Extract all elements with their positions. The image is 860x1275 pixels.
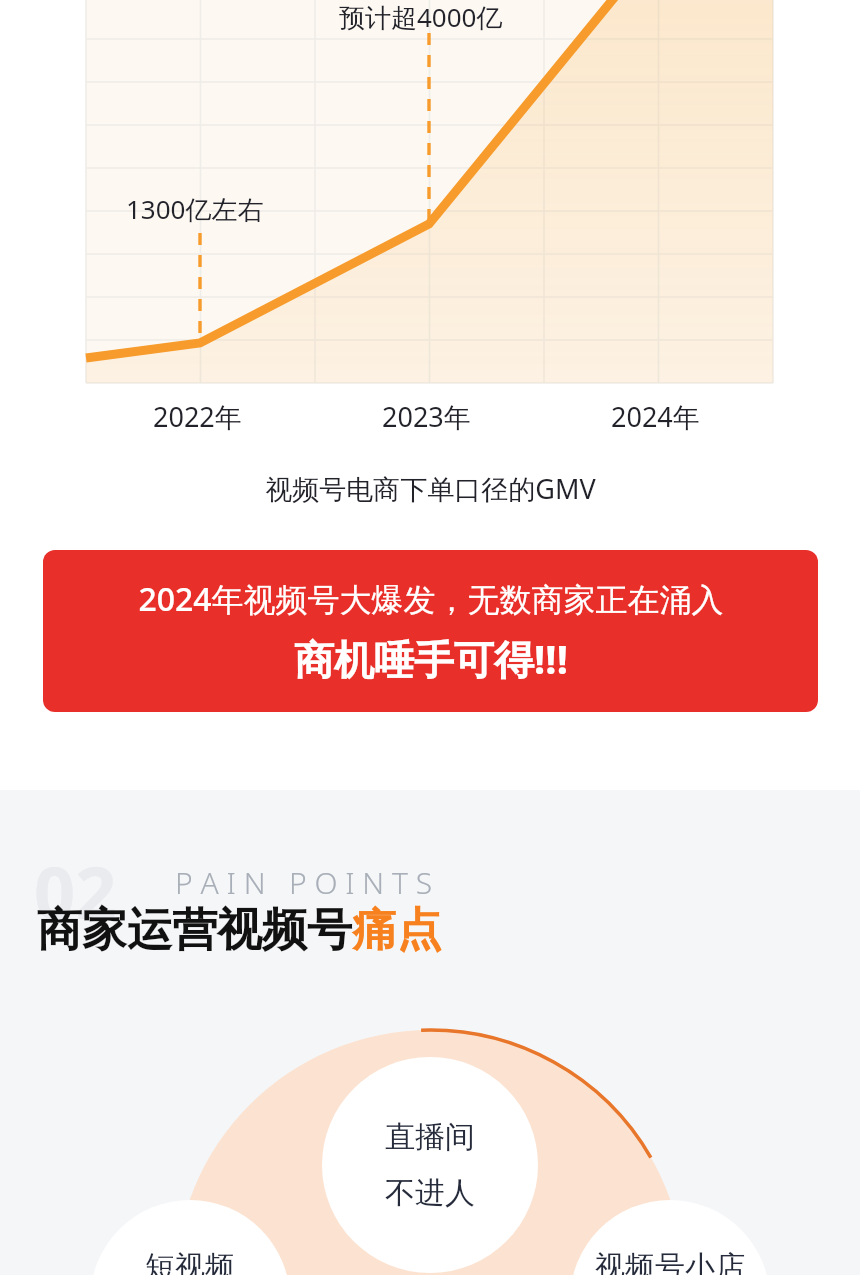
staticText: 2023年 bbox=[382, 398, 471, 435]
staticText: 02 bbox=[34, 842, 117, 940]
button[interactable]: 2024年视频号大爆发，无数商家正在涌入 bbox=[43, 550, 818, 712]
staticText: 不进人 bbox=[385, 1174, 475, 1212]
button[interactable]: 直播间 bbox=[322, 1057, 538, 1273]
staticText: 直播间 bbox=[385, 1118, 475, 1156]
staticText: 预计超4000亿 bbox=[339, 0, 503, 35]
staticText: 2022年 bbox=[153, 398, 242, 435]
staticText: 2024年视频号大爆发，无数商家正在涌入 bbox=[138, 577, 724, 621]
staticText: 2024年 bbox=[611, 398, 700, 435]
staticText: 短视频 bbox=[145, 1248, 235, 1275]
staticText: 商家运营视频号 bbox=[37, 902, 352, 959]
staticText: 视频号小店 bbox=[595, 1248, 745, 1275]
staticText: 痛点 bbox=[352, 902, 442, 959]
button[interactable]: 视频号小店 bbox=[570, 1200, 770, 1275]
staticText: 视频号电商下单口径的GMV bbox=[265, 470, 596, 507]
staticText: 商机唾手可得!!! bbox=[294, 631, 568, 686]
button[interactable]: 短视频 bbox=[90, 1200, 290, 1275]
staticText: P A I N P O I N T S bbox=[175, 862, 433, 903]
staticText: 1300亿左右 bbox=[126, 191, 264, 227]
